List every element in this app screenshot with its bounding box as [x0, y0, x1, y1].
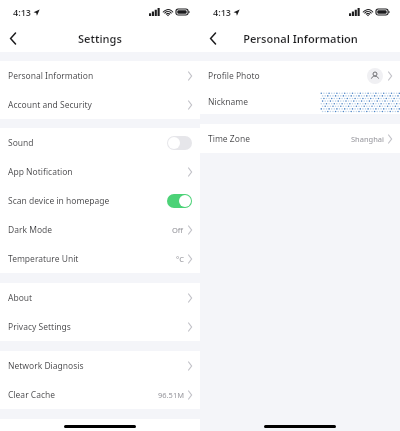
- button[interactable]: Dark Mode: [0, 215, 200, 244]
- button[interactable]: About: [0, 283, 200, 312]
- staticText: Nickname: [208, 96, 249, 108]
- staticText: 4:13: [13, 6, 31, 18]
- button[interactable]: Personal Information: [0, 61, 200, 90]
- staticText: Dark Mode: [8, 224, 53, 236]
- button[interactable]: Scan device in homepage: [0, 186, 200, 215]
- button[interactable]: Time Zone: [200, 124, 400, 153]
- button[interactable]: Toggle off: [167, 136, 192, 150]
- staticText: 4:13: [213, 6, 231, 18]
- button[interactable]: App Notification: [0, 157, 200, 186]
- staticText: About: [8, 292, 33, 304]
- staticText: Account and Security: [8, 99, 92, 111]
- staticText: Personal Information: [243, 31, 358, 46]
- staticText: Privacy Settings: [8, 321, 71, 333]
- staticText: Settings: [78, 31, 122, 46]
- button[interactable]: Nickname: [200, 90, 400, 114]
- button[interactable]: Sound: [0, 128, 200, 157]
- staticText: Network Diagnosis: [8, 360, 84, 372]
- button[interactable]: Account and Security: [0, 90, 200, 119]
- staticText: Temperature Unit: [8, 253, 79, 265]
- staticText: Clear Cache: [8, 389, 56, 401]
- staticText: 96.51M: [158, 390, 184, 400]
- staticText: Off: [172, 225, 184, 235]
- staticText: Scan device in homepage: [8, 195, 110, 207]
- staticText: Profile Photo: [208, 70, 260, 82]
- staticText: App Notification: [8, 166, 73, 178]
- button[interactable]: Temperature Unit: [0, 244, 200, 273]
- staticText: Shanghai: [351, 134, 384, 144]
- button[interactable]: Back: [0, 25, 26, 51]
- button[interactable]: Toggle on: [167, 194, 192, 208]
- button[interactable]: Privacy Settings: [0, 312, 200, 341]
- staticText: Sound: [8, 137, 34, 149]
- button[interactable]: Profile Photo: [200, 61, 400, 90]
- staticText: °C: [176, 254, 184, 264]
- button[interactable]: Clear Cache: [0, 380, 200, 409]
- button[interactable]: Network Diagnosis: [0, 351, 200, 380]
- staticText: Time Zone: [208, 133, 250, 145]
- button[interactable]: Back: [200, 25, 226, 51]
- staticText: Personal Information: [8, 70, 94, 82]
